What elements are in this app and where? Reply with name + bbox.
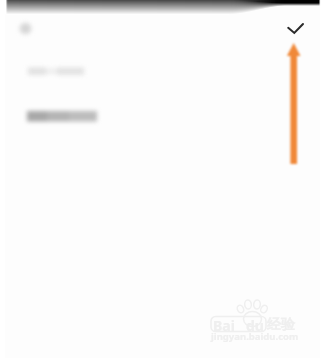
staticText: 经验: [267, 316, 295, 334]
staticText: Bai: [213, 316, 235, 335]
button[interactable]: Confirm: [282, 16, 310, 44]
staticText: jingyan.baidu.com: [211, 330, 299, 343]
staticText: du: [246, 316, 264, 335]
